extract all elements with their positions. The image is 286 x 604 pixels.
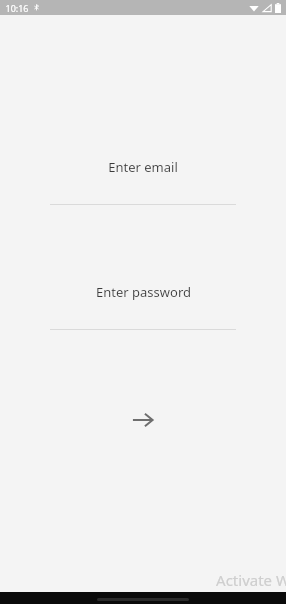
button[interactable]: Submit [125,402,161,438]
staticText: Activate W [216,570,286,590]
staticText: 10:16 [5,2,29,14]
button[interactable]: Enter email [0,158,286,205]
button[interactable]: Enter password [0,283,286,330]
staticText: Enter password [96,283,191,301]
staticText: Enter email [108,158,178,176]
